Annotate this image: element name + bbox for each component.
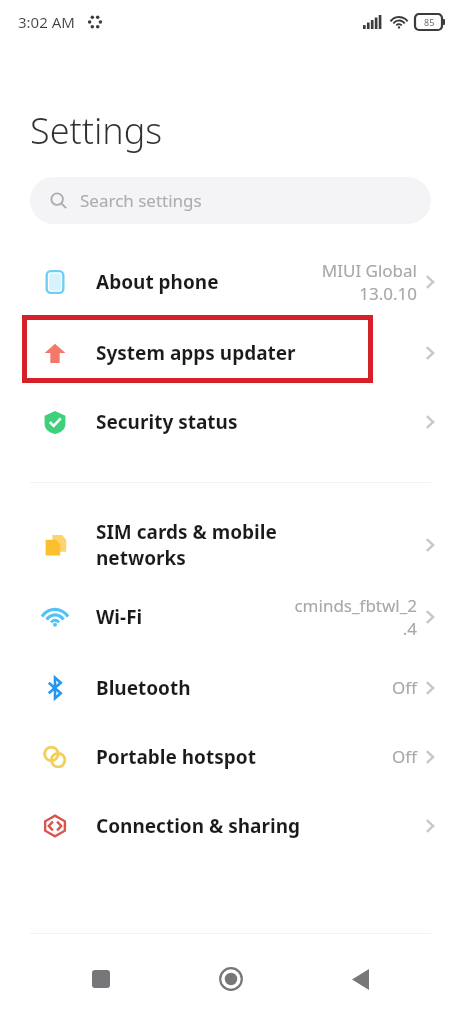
button[interactable]: Security status (0, 387, 461, 456)
button[interactable]: Search settings (30, 177, 431, 224)
button[interactable]: SIM cards & mobile networks (0, 509, 461, 581)
button[interactable]: Back (332, 951, 388, 1007)
button[interactable]: Bluetooth (0, 653, 461, 722)
button[interactable]: Home (203, 951, 259, 1007)
button[interactable]: About phone (0, 246, 461, 318)
staticText: MIUI Global 13.0.10 (321, 259, 417, 305)
staticText: Security status (96, 409, 425, 435)
staticText: Connection & sharing (96, 813, 425, 839)
staticText: Settings (30, 106, 163, 155)
staticText: Portable hotspot (96, 744, 392, 770)
button[interactable]: Portable hotspot (0, 722, 461, 791)
staticText: Off (392, 676, 417, 699)
button[interactable]: System apps updater (0, 318, 461, 387)
staticText: Off (392, 745, 417, 768)
staticText: 85 (424, 16, 435, 28)
button[interactable]: Wi-Fi (0, 581, 461, 653)
staticText: SIM cards & mobile networks (96, 519, 425, 571)
button[interactable]: Connection & sharing (0, 791, 461, 860)
button[interactable]: Recent apps (73, 951, 129, 1007)
staticText: Bluetooth (96, 675, 392, 701)
staticText: Wi-Fi (96, 604, 294, 630)
staticText: cminds_fbtwl_2 .4 (294, 594, 417, 640)
staticText: Search settings (80, 189, 202, 212)
staticText: System apps updater (96, 340, 425, 366)
staticText: About phone (96, 269, 321, 295)
staticText: 3:02 AM (18, 12, 75, 32)
